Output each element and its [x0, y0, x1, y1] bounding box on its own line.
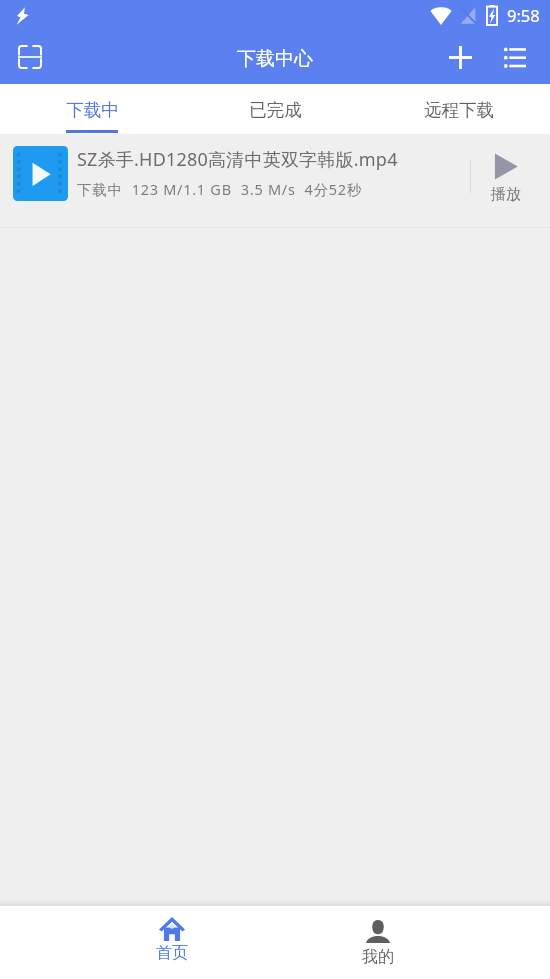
button[interactable]: Scan	[6, 33, 54, 81]
button[interactable]: 已完成	[184, 84, 367, 134]
button[interactable]: 远程下载	[367, 84, 550, 134]
staticText: 下载中 123 M/1.1 GB 3.5 M/s 4分52秒	[77, 179, 363, 199]
staticText: 已完成	[249, 99, 302, 121]
staticText: 远程下载	[424, 99, 494, 121]
staticText: 播放	[491, 185, 521, 204]
button[interactable]: Download list	[492, 34, 538, 80]
staticText: 下载中心	[237, 47, 313, 71]
button[interactable]: 播放	[477, 134, 534, 227]
staticText: 首页	[156, 943, 188, 963]
button[interactable]: 我的	[332, 906, 424, 979]
button[interactable]: 首页	[126, 906, 218, 979]
button[interactable]: Add download	[437, 34, 483, 80]
button[interactable]: SZ杀手.HD1280高清中英双字韩版.mp4	[0, 134, 550, 228]
staticText: 下载中	[66, 99, 119, 121]
staticText: SZ杀手.HD1280高清中英双字韩版.mp4	[77, 147, 398, 172]
staticText: 我的	[362, 947, 394, 967]
button[interactable]: 下载中	[0, 84, 184, 134]
staticText: 9:58	[507, 4, 540, 26]
